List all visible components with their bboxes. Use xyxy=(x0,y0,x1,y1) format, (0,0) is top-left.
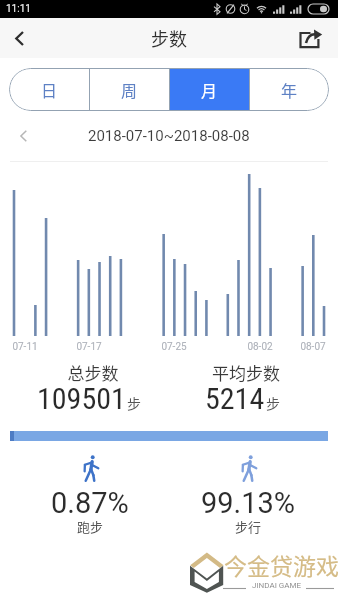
staticText: 2018-07-10~2018-08-08 xyxy=(88,127,250,145)
staticText: 07-17 xyxy=(69,341,109,353)
staticText: 平均步数 xyxy=(186,360,306,385)
staticText: 月 xyxy=(201,78,218,101)
button[interactable]: Share xyxy=(290,18,338,58)
staticText: 07-25 xyxy=(154,341,194,353)
staticText: 步行 xyxy=(235,517,262,536)
staticText: 步数 xyxy=(151,25,187,51)
staticText: 0.87% xyxy=(51,486,129,520)
button[interactable]: 年 xyxy=(249,68,329,111)
staticText: JINDAI GAME xyxy=(252,581,302,590)
staticText: 08-02 xyxy=(240,341,280,353)
staticText: 日 xyxy=(41,78,58,101)
button[interactable]: Previous period xyxy=(11,124,35,148)
staticText: 07-11 xyxy=(5,341,45,353)
staticText: 跑步 xyxy=(77,517,104,536)
button[interactable]: 月 xyxy=(169,68,249,111)
staticText: 周 xyxy=(121,78,138,101)
staticText: 步 xyxy=(127,393,141,413)
button[interactable]: 日 xyxy=(9,68,89,111)
button[interactable]: Back xyxy=(0,18,40,58)
staticText: 5214 xyxy=(205,381,265,416)
staticText: 年 xyxy=(281,78,298,101)
staticText: 99.13% xyxy=(201,486,296,520)
staticText: 109501 xyxy=(37,381,126,416)
button[interactable]: 周 xyxy=(89,68,169,111)
staticText: 步 xyxy=(266,393,280,413)
staticText: 今金贷游戏 xyxy=(224,548,338,581)
staticText: 11:11 xyxy=(6,3,31,15)
staticText: 08-07 xyxy=(293,341,333,353)
staticText: 总步数 xyxy=(33,360,153,385)
